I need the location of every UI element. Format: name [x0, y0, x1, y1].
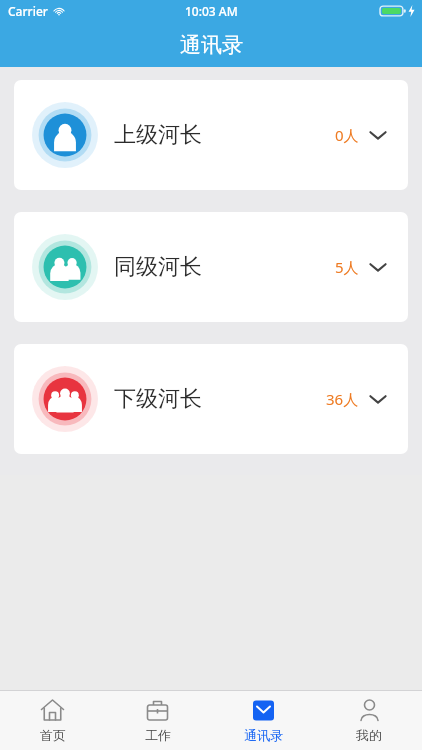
staticText: Carrier — [8, 3, 48, 19]
staticText: 同级河长 — [114, 253, 202, 281]
staticText: 通讯录 — [244, 727, 283, 743]
staticText: 首页 — [40, 727, 66, 743]
button[interactable]: 下级河长 — [14, 344, 408, 454]
button[interactable]: 同级河长 — [14, 212, 408, 322]
staticText: 10:03 AM — [185, 3, 238, 19]
staticText: 工作 — [145, 727, 171, 743]
button[interactable]: 上级河长 — [14, 80, 408, 190]
button[interactable]: 我的 — [316, 691, 422, 750]
button[interactable]: 首页 — [0, 691, 105, 750]
staticText: 0人 — [335, 125, 359, 145]
staticText: 上级河长 — [114, 121, 202, 149]
button[interactable]: 通讯录 — [210, 691, 316, 750]
staticText: 下级河长 — [114, 385, 202, 413]
staticText: 5人 — [335, 257, 359, 277]
button[interactable]: 工作 — [105, 691, 210, 750]
staticText: 通讯录 — [180, 32, 243, 58]
staticText: 我的 — [356, 727, 382, 743]
staticText: 36人 — [326, 389, 359, 409]
